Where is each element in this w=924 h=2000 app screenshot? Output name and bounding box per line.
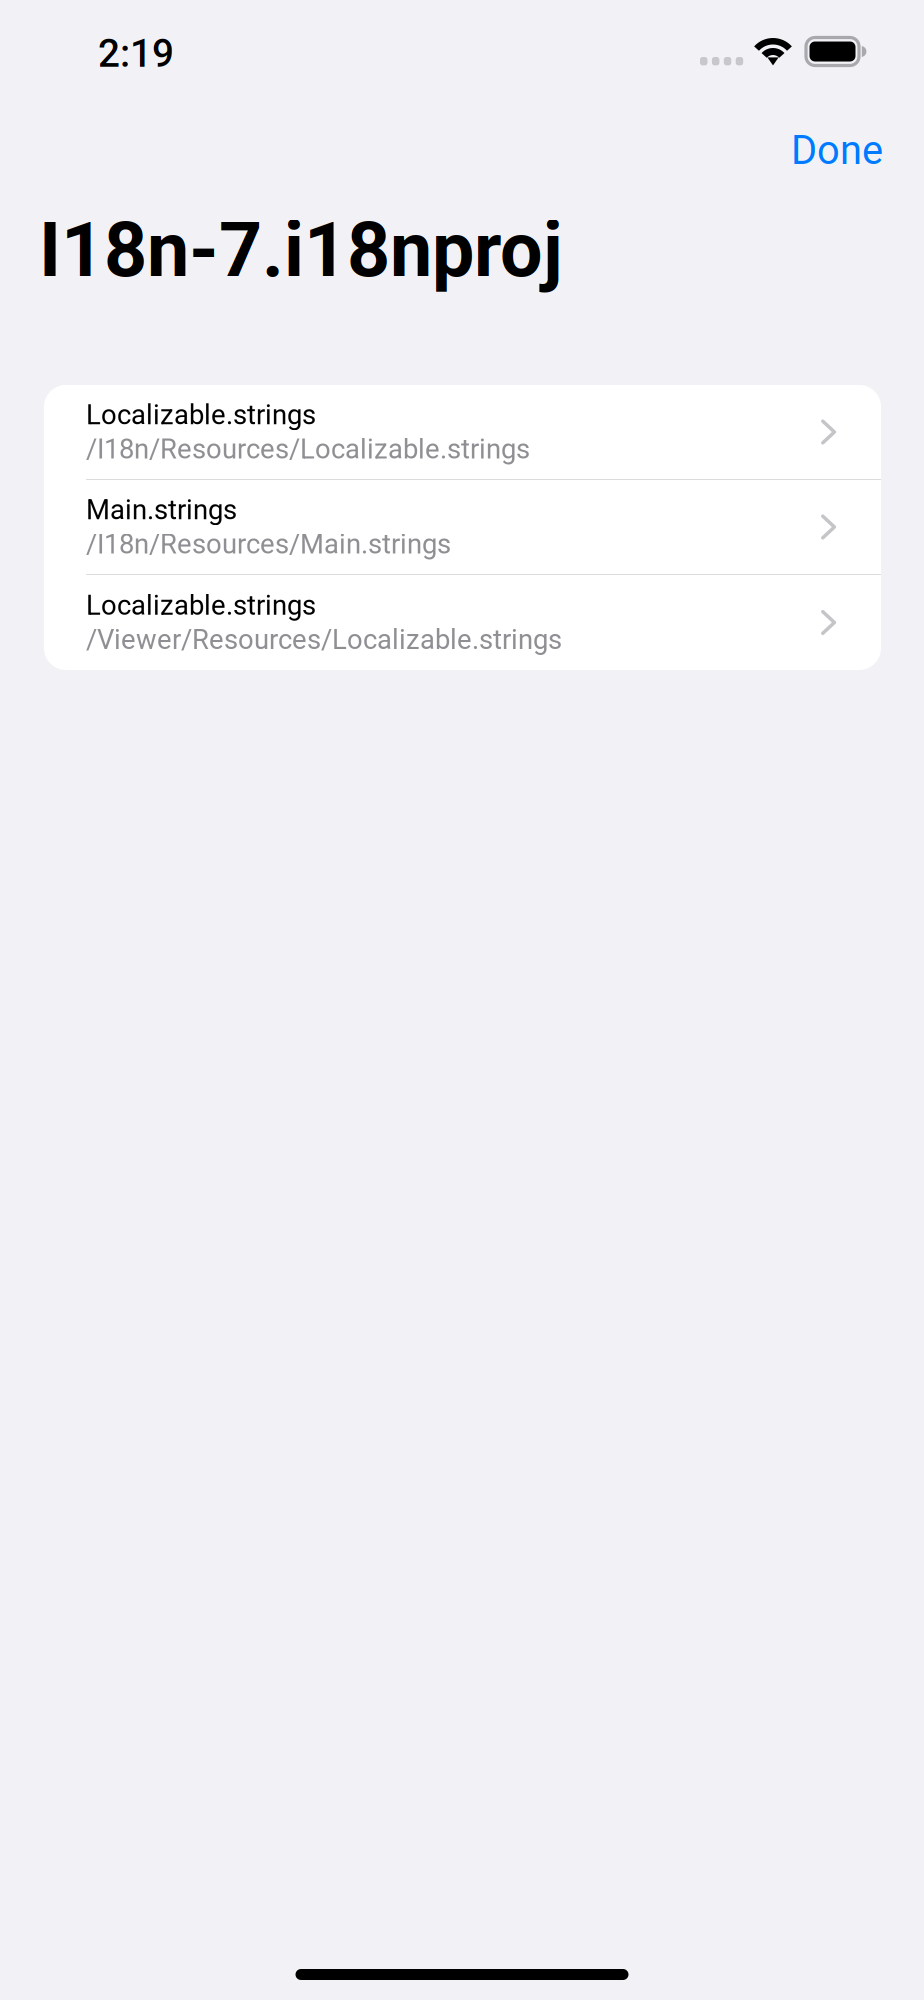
staticText: /I18n/Resources/Main.strings — [86, 528, 451, 560]
staticText: /I18n/Resources/Localizable.strings — [86, 433, 530, 465]
staticText: Main.strings — [86, 494, 237, 526]
staticText: /Viewer/Resources/Localizable.strings — [86, 624, 562, 656]
staticText: 2:19 — [98, 31, 174, 76]
staticText: Localizable.strings — [86, 589, 316, 621]
button[interactable]: Main.strings — [44, 480, 881, 575]
button[interactable]: Done — [781, 117, 893, 184]
button[interactable]: Localizable.strings — [44, 385, 881, 480]
staticText: Localizable.strings — [86, 399, 316, 431]
staticText: Done — [791, 127, 883, 174]
staticText: I18n-7.i18nproj — [39, 206, 563, 294]
button[interactable]: Localizable.strings — [44, 575, 881, 670]
